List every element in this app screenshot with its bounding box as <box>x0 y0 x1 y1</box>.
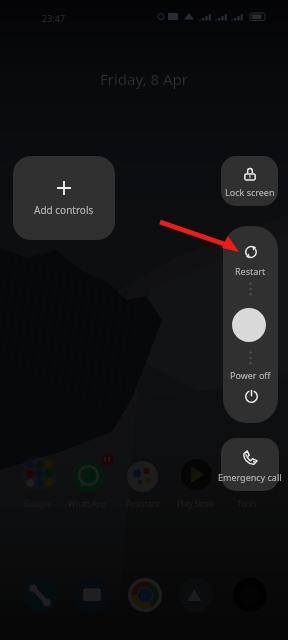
button[interactable]: Power off <box>238 383 264 409</box>
staticText: 23:47 <box>42 12 66 24</box>
staticText: WhatsApp <box>68 498 107 509</box>
button[interactable]: App 3 <box>128 578 162 612</box>
staticText: Emergency call <box>218 471 282 483</box>
button[interactable]: App 4 <box>179 578 213 612</box>
staticText: Power off <box>230 369 271 381</box>
button[interactable]: Power slider <box>232 308 266 342</box>
staticText: Play Store <box>177 498 215 509</box>
staticText: Google <box>24 498 51 509</box>
button[interactable]: Assistant <box>127 461 158 492</box>
staticText: Friday, 8 Apr <box>100 69 188 89</box>
staticText: Assistant <box>126 498 160 509</box>
staticText: Add controls <box>34 203 94 217</box>
button[interactable]: Restart <box>238 239 264 265</box>
button[interactable]: Google folder <box>23 457 56 490</box>
button[interactable]: App 1 <box>23 578 57 612</box>
button[interactable]: WhatsApp <box>73 461 104 492</box>
staticText: Tools <box>237 498 257 509</box>
button[interactable]: Lock screen <box>221 156 278 206</box>
button[interactable]: Add controls <box>13 156 115 240</box>
staticText: Lock screen <box>225 186 275 198</box>
button[interactable]: Play Store <box>181 459 212 490</box>
staticText: 11 <box>103 455 112 465</box>
button[interactable]: Emergency call <box>221 438 279 491</box>
button[interactable]: App 2 <box>75 578 109 612</box>
staticText: Restart <box>235 265 266 277</box>
button[interactable]: App 5 <box>233 578 267 612</box>
